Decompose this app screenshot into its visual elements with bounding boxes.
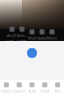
button[interactable]: Add xyxy=(26,82,38,94)
button[interactable]: Me xyxy=(51,82,64,94)
staticText: Feed xyxy=(41,88,49,94)
staticText: AirDrop xyxy=(7,33,17,43)
staticText: Search xyxy=(13,88,25,94)
staticText: Mail xyxy=(28,35,36,41)
button[interactable]: Messages xyxy=(17,29,27,40)
button[interactable]: AirDrop xyxy=(7,29,17,40)
button[interactable]: Feed xyxy=(38,82,51,94)
button[interactable]: More xyxy=(47,29,57,40)
button[interactable]: Notes xyxy=(37,29,47,40)
button[interactable]: Home xyxy=(0,82,13,94)
staticText: Add xyxy=(28,88,35,94)
button[interactable]: Mail xyxy=(27,29,37,40)
staticText: Messages xyxy=(17,33,27,43)
staticText: More xyxy=(47,35,57,41)
staticText: Notes xyxy=(37,35,47,41)
staticText: Me xyxy=(55,88,61,94)
button[interactable]: Search xyxy=(13,82,26,94)
staticText: Home xyxy=(1,88,12,94)
